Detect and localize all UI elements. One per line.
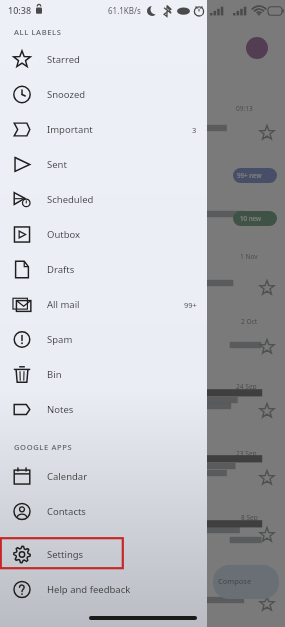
staticText: Calendar bbox=[47, 470, 88, 483]
button[interactable]: Bin bbox=[0, 357, 207, 392]
button[interactable]: Scheduled bbox=[0, 182, 207, 217]
staticText: Contacts bbox=[47, 505, 86, 518]
staticText: Settings bbox=[47, 548, 84, 561]
staticText: 10 new bbox=[240, 214, 261, 222]
staticText: Drafts bbox=[47, 263, 75, 276]
staticText: Compose bbox=[218, 576, 252, 586]
button[interactable]: Spam bbox=[0, 322, 207, 357]
button[interactable]: Snoozed bbox=[0, 77, 207, 112]
button[interactable]: Notes bbox=[0, 392, 207, 427]
staticText: 3 bbox=[192, 125, 197, 135]
staticText: 8 Sep bbox=[241, 513, 258, 522]
staticText: Important bbox=[47, 123, 93, 136]
staticText: 61.1KB/s bbox=[108, 5, 141, 16]
button[interactable]: Contacts bbox=[0, 494, 207, 529]
button[interactable]: All mail bbox=[0, 287, 207, 322]
staticText: 23 Sep bbox=[236, 449, 257, 458]
staticText: 2 Oct bbox=[241, 317, 258, 326]
staticText: 09:13 bbox=[236, 104, 253, 113]
button[interactable]: Help and feedback bbox=[0, 572, 207, 607]
staticText: Outbox bbox=[47, 228, 81, 241]
staticText: Scheduled bbox=[47, 193, 94, 206]
button[interactable]: Important bbox=[0, 112, 207, 147]
staticText: 10:38 bbox=[8, 4, 32, 16]
staticText: 24 Sep bbox=[236, 382, 257, 391]
staticText: Starred bbox=[47, 53, 80, 66]
staticText: 99+ bbox=[184, 300, 197, 310]
button[interactable]: Outbox bbox=[0, 217, 207, 252]
staticText: Sent bbox=[47, 158, 67, 171]
staticText: 99+ new bbox=[237, 171, 262, 179]
staticText: ALL LABELS bbox=[14, 27, 62, 37]
staticText: Bin bbox=[47, 368, 62, 381]
staticText: Spam bbox=[47, 333, 73, 346]
button[interactable]: Calendar bbox=[0, 459, 207, 494]
staticText: Help and feedback bbox=[47, 583, 131, 596]
staticText: All mail bbox=[47, 298, 80, 311]
staticText: Notes bbox=[47, 403, 74, 416]
button[interactable]: Drafts bbox=[0, 252, 207, 287]
staticText: Snoozed bbox=[47, 88, 86, 101]
button[interactable]: Sent bbox=[0, 147, 207, 182]
button[interactable]: Settings bbox=[0, 537, 207, 572]
staticText: 1 Nov bbox=[240, 252, 258, 261]
button[interactable]: Starred bbox=[0, 42, 207, 77]
staticText: GOOGLE APPS bbox=[14, 442, 73, 452]
